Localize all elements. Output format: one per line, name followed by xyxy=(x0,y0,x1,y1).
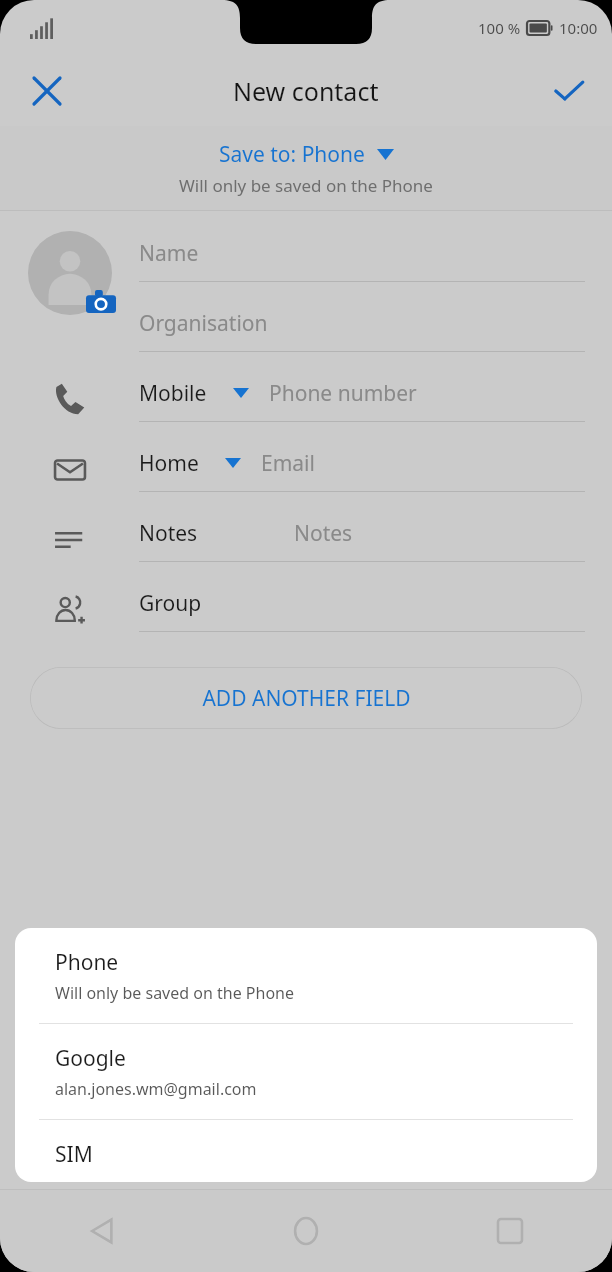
button[interactable]: Close xyxy=(14,58,80,124)
staticText: Phone xyxy=(55,948,119,977)
button[interactable]: Group xyxy=(0,575,612,645)
button[interactable]: Add photo xyxy=(28,231,112,315)
button[interactable]: Phone xyxy=(15,928,597,1023)
button[interactable]: Back xyxy=(0,1190,204,1272)
staticText: Notes xyxy=(139,519,198,548)
staticText: Email xyxy=(261,449,315,478)
button[interactable]: Notes xyxy=(0,505,612,575)
staticText: Name xyxy=(139,239,199,268)
button[interactable]: Recent apps xyxy=(408,1190,612,1272)
button[interactable]: Save to: Phone xyxy=(0,140,612,197)
button[interactable]: Organisation xyxy=(139,295,585,351)
staticText: Notes xyxy=(294,519,353,548)
staticText: Phone number xyxy=(269,379,417,408)
staticText: alan.jones.wm@gmail.com xyxy=(55,1078,257,1100)
staticText: 100 % xyxy=(478,18,521,38)
staticText: Will only be saved on the Phone xyxy=(179,174,433,197)
staticText: New contact xyxy=(233,74,379,108)
staticText: 10:00 xyxy=(559,18,598,38)
button[interactable]: Name xyxy=(139,225,585,281)
button[interactable]: Mobile xyxy=(0,365,612,435)
staticText: Organisation xyxy=(139,309,268,338)
staticText: Google xyxy=(55,1044,126,1073)
button[interactable]: ADD ANOTHER FIELD xyxy=(30,667,582,729)
staticText: Group xyxy=(139,589,202,618)
staticText: SIM xyxy=(55,1140,93,1163)
staticText: ADD ANOTHER FIELD xyxy=(202,684,411,713)
staticText: Save to: Phone xyxy=(219,140,365,169)
button[interactable]: Google xyxy=(15,1024,597,1119)
staticText: Will only be saved on the Phone xyxy=(55,982,294,1004)
button[interactable]: Home xyxy=(0,435,612,505)
staticText: Mobile xyxy=(139,379,207,408)
button[interactable]: SIM xyxy=(15,1120,597,1182)
staticText: Home xyxy=(139,449,199,478)
button[interactable]: Save xyxy=(536,58,602,124)
